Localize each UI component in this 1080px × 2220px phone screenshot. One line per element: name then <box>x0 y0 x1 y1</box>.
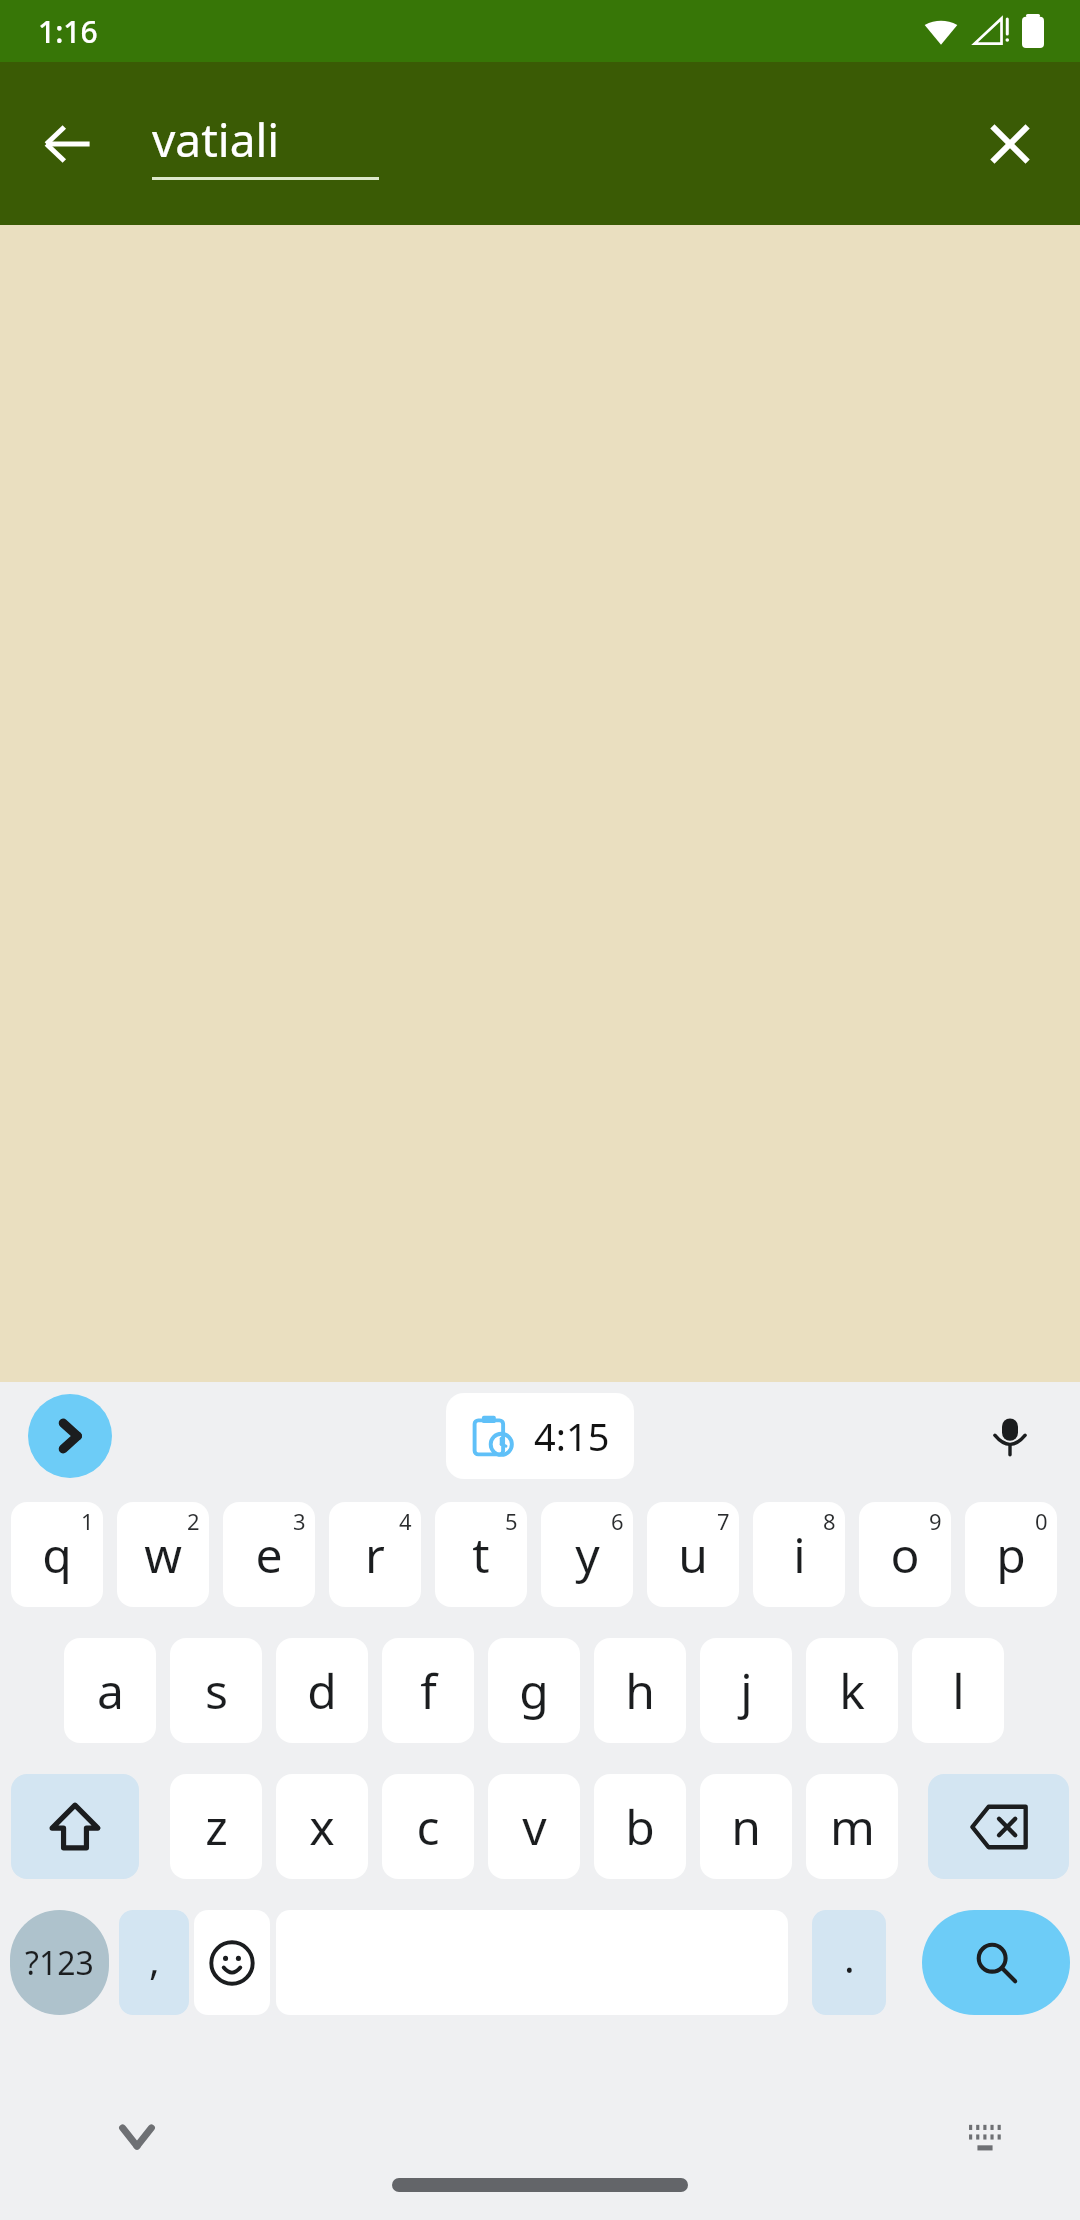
staticText: 9 <box>929 1506 942 1536</box>
button[interactable]: t <box>435 1502 527 1607</box>
button[interactable]: s <box>170 1638 262 1743</box>
button[interactable]: 4:15 <box>446 1393 634 1479</box>
button[interactable]: g <box>488 1638 580 1743</box>
button[interactable]: p <box>965 1502 1057 1607</box>
button[interactable]: v <box>488 1774 580 1879</box>
button[interactable]: Back <box>20 96 116 192</box>
button[interactable]: Clear search <box>962 96 1058 192</box>
staticText: x <box>309 1794 335 1859</box>
button[interactable]: q <box>11 1502 103 1607</box>
button[interactable]: o <box>859 1502 951 1607</box>
staticText: h <box>625 1658 655 1723</box>
staticText: r <box>365 1522 385 1587</box>
button[interactable]: u <box>647 1502 739 1607</box>
button[interactable]: h <box>594 1638 686 1743</box>
button[interactable]: e <box>223 1502 315 1607</box>
button[interactable]: n <box>700 1774 792 1879</box>
staticText: a <box>97 1658 124 1723</box>
button[interactable]: x <box>276 1774 368 1879</box>
staticText: 0 <box>1035 1506 1048 1536</box>
staticText: p <box>996 1522 1026 1587</box>
button[interactable]: k <box>806 1638 898 1743</box>
staticText: v <box>522 1794 547 1859</box>
staticText: k <box>839 1658 865 1723</box>
staticText: 8 <box>823 1506 836 1536</box>
staticText: i <box>793 1522 806 1587</box>
staticText: 5 <box>505 1506 518 1536</box>
staticText: . <box>844 1930 855 1984</box>
staticText: 1:16 <box>38 11 98 52</box>
button[interactable]: . <box>812 1910 886 2015</box>
staticText: s <box>205 1658 228 1723</box>
staticText: c <box>416 1794 440 1859</box>
button[interactable]: a <box>64 1638 156 1743</box>
button[interactable]: m <box>806 1774 898 1879</box>
staticText: 4 <box>399 1506 412 1536</box>
button[interactable]: j <box>700 1638 792 1743</box>
staticText: f <box>420 1658 437 1723</box>
button[interactable]: d <box>276 1638 368 1743</box>
staticText: 4:15 <box>534 1410 610 1462</box>
staticText: w <box>144 1522 182 1587</box>
staticText: q <box>42 1522 72 1587</box>
button[interactable]: Search <box>922 1910 1070 2015</box>
button[interactable]: Emoji <box>194 1910 270 2015</box>
staticText: e <box>255 1522 283 1587</box>
button[interactable]: y <box>541 1502 633 1607</box>
button[interactable]: Shift <box>11 1774 139 1879</box>
staticText: d <box>307 1658 337 1723</box>
staticText: 3 <box>293 1506 306 1536</box>
staticText: 1 <box>81 1506 94 1536</box>
staticText: j <box>740 1658 753 1723</box>
button[interactable]: l <box>912 1638 1004 1743</box>
button[interactable]: c <box>382 1774 474 1879</box>
staticText: y <box>575 1522 600 1587</box>
button[interactable]: f <box>382 1638 474 1743</box>
button[interactable]: b <box>594 1774 686 1879</box>
staticText: l <box>952 1658 965 1723</box>
staticText: z <box>205 1794 228 1859</box>
staticText: m <box>830 1794 875 1859</box>
button[interactable]: Voice input <box>968 1394 1052 1478</box>
staticText: , <box>149 1932 160 1986</box>
button[interactable]: , <box>119 1910 189 2015</box>
button[interactable]: More suggestions <box>28 1394 112 1478</box>
staticText: g <box>519 1658 549 1723</box>
button[interactable]: w <box>117 1502 209 1607</box>
staticText: o <box>890 1522 920 1587</box>
staticText: u <box>678 1522 708 1587</box>
button[interactable]: Switch keyboard <box>950 2102 1020 2172</box>
button[interactable]: ?123 <box>10 1910 109 2015</box>
staticText: 7 <box>717 1506 730 1536</box>
button[interactable]: vatiali <box>152 108 582 180</box>
button[interactable]: Hide keyboard <box>102 2102 172 2172</box>
button[interactable]: Backspace <box>928 1774 1069 1879</box>
staticText: b <box>625 1794 655 1859</box>
staticText: vatiali <box>152 108 280 171</box>
staticText: t <box>472 1522 490 1587</box>
staticText: n <box>731 1794 761 1859</box>
button[interactable]: r <box>329 1502 421 1607</box>
staticText: ?123 <box>25 1941 94 1985</box>
staticText: 6 <box>611 1506 624 1536</box>
button[interactable]: z <box>170 1774 262 1879</box>
button[interactable]: i <box>753 1502 845 1607</box>
staticText: 2 <box>187 1506 200 1536</box>
